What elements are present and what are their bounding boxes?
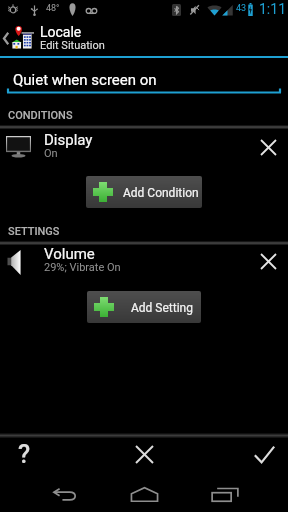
button[interactable]: Home [124, 479, 164, 509]
button[interactable]: Quiet when screen on [0, 60, 288, 96]
button[interactable]: Cancel [121, 438, 167, 472]
staticText: Edit Situation [40, 39, 105, 52]
button[interactable] [0, 126, 288, 170]
staticText: Add Condition [123, 186, 199, 200]
button[interactable]: Recents [205, 479, 245, 509]
staticText: Add Setting [131, 301, 193, 315]
staticText: SETTINGS [8, 225, 60, 238]
staticText: Volume [44, 245, 95, 263]
staticText: ? [18, 440, 31, 469]
staticText: On [44, 147, 58, 160]
button[interactable] [0, 19, 288, 56]
button[interactable] [87, 291, 201, 323]
staticText: Locale [40, 24, 82, 40]
staticText: 43 [236, 3, 247, 14]
button[interactable]: Remove [249, 126, 288, 170]
staticText: CONDITIONS [8, 109, 73, 122]
staticText: 1:11 [259, 1, 286, 17]
button[interactable]: Back [44, 479, 84, 509]
staticText: 29%; Vibrate On [44, 261, 121, 274]
button[interactable]: Remove [249, 240, 288, 284]
staticText: Display [44, 131, 93, 149]
staticText: 48° [46, 3, 60, 14]
button[interactable]: Done [241, 438, 287, 472]
button[interactable] [0, 240, 288, 284]
button[interactable]: Help [2, 438, 47, 472]
button[interactable] [86, 176, 202, 208]
staticText: Quiet when screen on [13, 71, 157, 89]
